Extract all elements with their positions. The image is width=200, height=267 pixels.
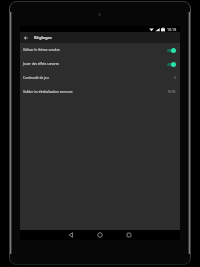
button[interactable]: Recent apps bbox=[124, 230, 134, 240]
staticText: Continuité de jeu bbox=[23, 76, 174, 80]
staticText: Jouer des effets sonores bbox=[23, 62, 167, 66]
button[interactable]: Continuité de jeu bbox=[20, 71, 180, 85]
staticText: Réglages bbox=[34, 35, 52, 41]
staticText: 5 bbox=[174, 76, 176, 80]
button[interactable]: Back bbox=[20, 32, 31, 43]
button[interactable]: Back navigation bbox=[66, 230, 76, 240]
staticText: Valider la réinitialisation serveurs bbox=[23, 90, 168, 94]
staticText: 10:18 bbox=[167, 27, 177, 32]
button[interactable]: Valider la réinitialisation serveurs bbox=[20, 85, 180, 99]
staticText: NON bbox=[168, 90, 176, 94]
button[interactable]: Home bbox=[95, 230, 105, 240]
button[interactable]: Utiliser le thème sombre bbox=[20, 43, 180, 57]
button[interactable]: Jouer des effets sonores bbox=[20, 57, 180, 71]
staticText: Utiliser le thème sombre bbox=[23, 48, 167, 52]
